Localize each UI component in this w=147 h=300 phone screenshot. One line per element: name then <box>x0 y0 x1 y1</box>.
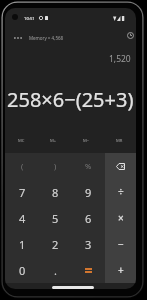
button[interactable]: 5 <box>39 205 72 231</box>
button[interactable]: MC <box>5 135 37 147</box>
staticText: × <box>118 211 124 225</box>
staticText: 1,520 <box>109 53 131 65</box>
button[interactable]: Backspace <box>105 153 136 179</box>
staticText: 6 <box>85 211 92 226</box>
staticText: M− <box>83 138 90 144</box>
button[interactable]: × <box>105 205 136 231</box>
staticText: 8 <box>52 185 59 200</box>
button[interactable]: % <box>72 153 105 179</box>
staticText: 4 <box>19 211 26 226</box>
button[interactable]: − <box>105 231 136 257</box>
button[interactable]: 4 <box>5 205 39 231</box>
button[interactable]: 0 <box>5 257 39 283</box>
button[interactable]: + <box>105 257 136 283</box>
button[interactable]: 3 <box>72 231 105 257</box>
staticText: MR <box>116 138 123 144</box>
button[interactable]: 6 <box>72 205 105 231</box>
staticText: 0 <box>19 263 26 278</box>
staticText: 9 <box>85 185 92 200</box>
button[interactable]: M+ <box>37 135 70 147</box>
button[interactable]: M− <box>70 135 103 147</box>
button[interactable]: ( <box>5 153 39 179</box>
staticText: 3 <box>85 237 92 252</box>
button[interactable]: 8 <box>39 179 72 205</box>
staticText: MC <box>18 138 25 144</box>
button[interactable]: ) <box>39 153 72 179</box>
button[interactable]: More options <box>10 30 26 46</box>
staticText: + <box>118 263 124 277</box>
staticText: − <box>118 237 124 251</box>
staticText: ( <box>21 161 24 171</box>
button[interactable]: 9 <box>72 179 105 205</box>
staticText: M+ <box>50 138 57 144</box>
staticText: 258×6−(25+3) <box>7 86 134 113</box>
button[interactable]: MR <box>103 135 136 147</box>
staticText: . <box>54 263 57 278</box>
button[interactable] <box>72 257 105 283</box>
button[interactable]: 2 <box>39 231 72 257</box>
staticText: ) <box>54 161 57 171</box>
staticText: 5 <box>52 211 59 226</box>
button[interactable]: History <box>122 27 136 43</box>
button[interactable]: 7 <box>5 179 39 205</box>
staticText: 7 <box>19 185 26 200</box>
staticText: 1 <box>19 237 26 252</box>
staticText: 10:51 <box>24 16 35 22</box>
button[interactable]: . <box>39 257 72 283</box>
button[interactable]: 1 <box>5 231 39 257</box>
staticText: Memory = 4,568 <box>29 35 64 41</box>
staticText: % <box>85 161 92 171</box>
button[interactable]: ÷ <box>105 179 136 205</box>
staticText: 2 <box>52 237 59 252</box>
staticText: ÷ <box>118 185 124 199</box>
